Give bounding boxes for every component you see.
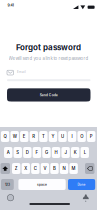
staticText: C [34,166,37,171]
staticText: O [80,134,83,139]
button[interactable]: Z [12,163,20,174]
button[interactable]: L [81,147,89,158]
button[interactable]: Send Code [7,88,90,101]
staticText: R [32,134,35,139]
staticText: Done [78,183,86,186]
button[interactable]: K [71,147,79,158]
staticText: 123 [5,183,10,186]
button[interactable]: F [33,147,41,158]
staticText: K [74,150,77,155]
button[interactable]: V [41,163,49,174]
button[interactable]: Shift [0,163,10,174]
staticText: We will send you a link to reset passwor… [8,56,88,61]
button[interactable]: S [14,147,22,158]
button[interactable]: Y [49,131,57,142]
button[interactable]: M [69,163,78,174]
button[interactable]: A [4,147,12,158]
button[interactable]: I [68,131,76,142]
button[interactable]: space [18,179,66,190]
staticText: U [61,134,64,139]
button[interactable]: N [60,163,68,174]
button[interactable]: O [77,131,86,142]
button[interactable]: Emoji keyboard [7,194,14,201]
staticText: A [7,150,10,155]
button[interactable]: P [87,131,95,142]
staticText: Forgot password [16,43,81,52]
staticText: J [65,150,67,155]
staticText: I [72,134,73,139]
staticText: L [84,150,86,155]
staticText: D [26,150,29,155]
staticText: T [42,134,45,139]
staticText: P [90,134,93,139]
button[interactable]: J [61,147,70,158]
staticText: Q [4,134,7,139]
button[interactable]: Dictate [82,193,89,202]
button[interactable]: Done [68,179,95,190]
button[interactable]: G [42,147,51,158]
button[interactable]: Q [1,131,9,142]
staticText: 9:41 [7,3,13,7]
staticText: Z [15,166,18,171]
staticText: N [63,166,66,171]
button[interactable]: 123 [1,179,14,190]
button[interactable]: X [22,163,30,174]
staticText: Email [17,70,26,74]
staticText: G [45,150,48,155]
button[interactable]: Delete [85,163,94,174]
staticText: B [53,166,56,171]
staticText: Send Code [40,93,58,97]
staticText: E [23,134,26,139]
button[interactable]: C [31,163,39,174]
staticText: space [37,183,47,186]
button[interactable]: E [20,131,28,142]
button[interactable]: T [39,131,48,142]
staticText: V [43,166,46,171]
button[interactable]: H [52,147,60,158]
staticText: S [16,150,19,155]
staticText: H [55,150,58,155]
staticText: X [24,166,27,171]
button[interactable]: D [23,147,31,158]
button[interactable]: B [50,163,59,174]
staticText: W [13,134,17,139]
button[interactable]: U [58,131,67,142]
staticText: M [72,166,76,171]
staticText: F [35,150,38,155]
button[interactable]: R [30,131,38,142]
button[interactable]: W [10,131,19,142]
staticText: Y [51,134,54,139]
